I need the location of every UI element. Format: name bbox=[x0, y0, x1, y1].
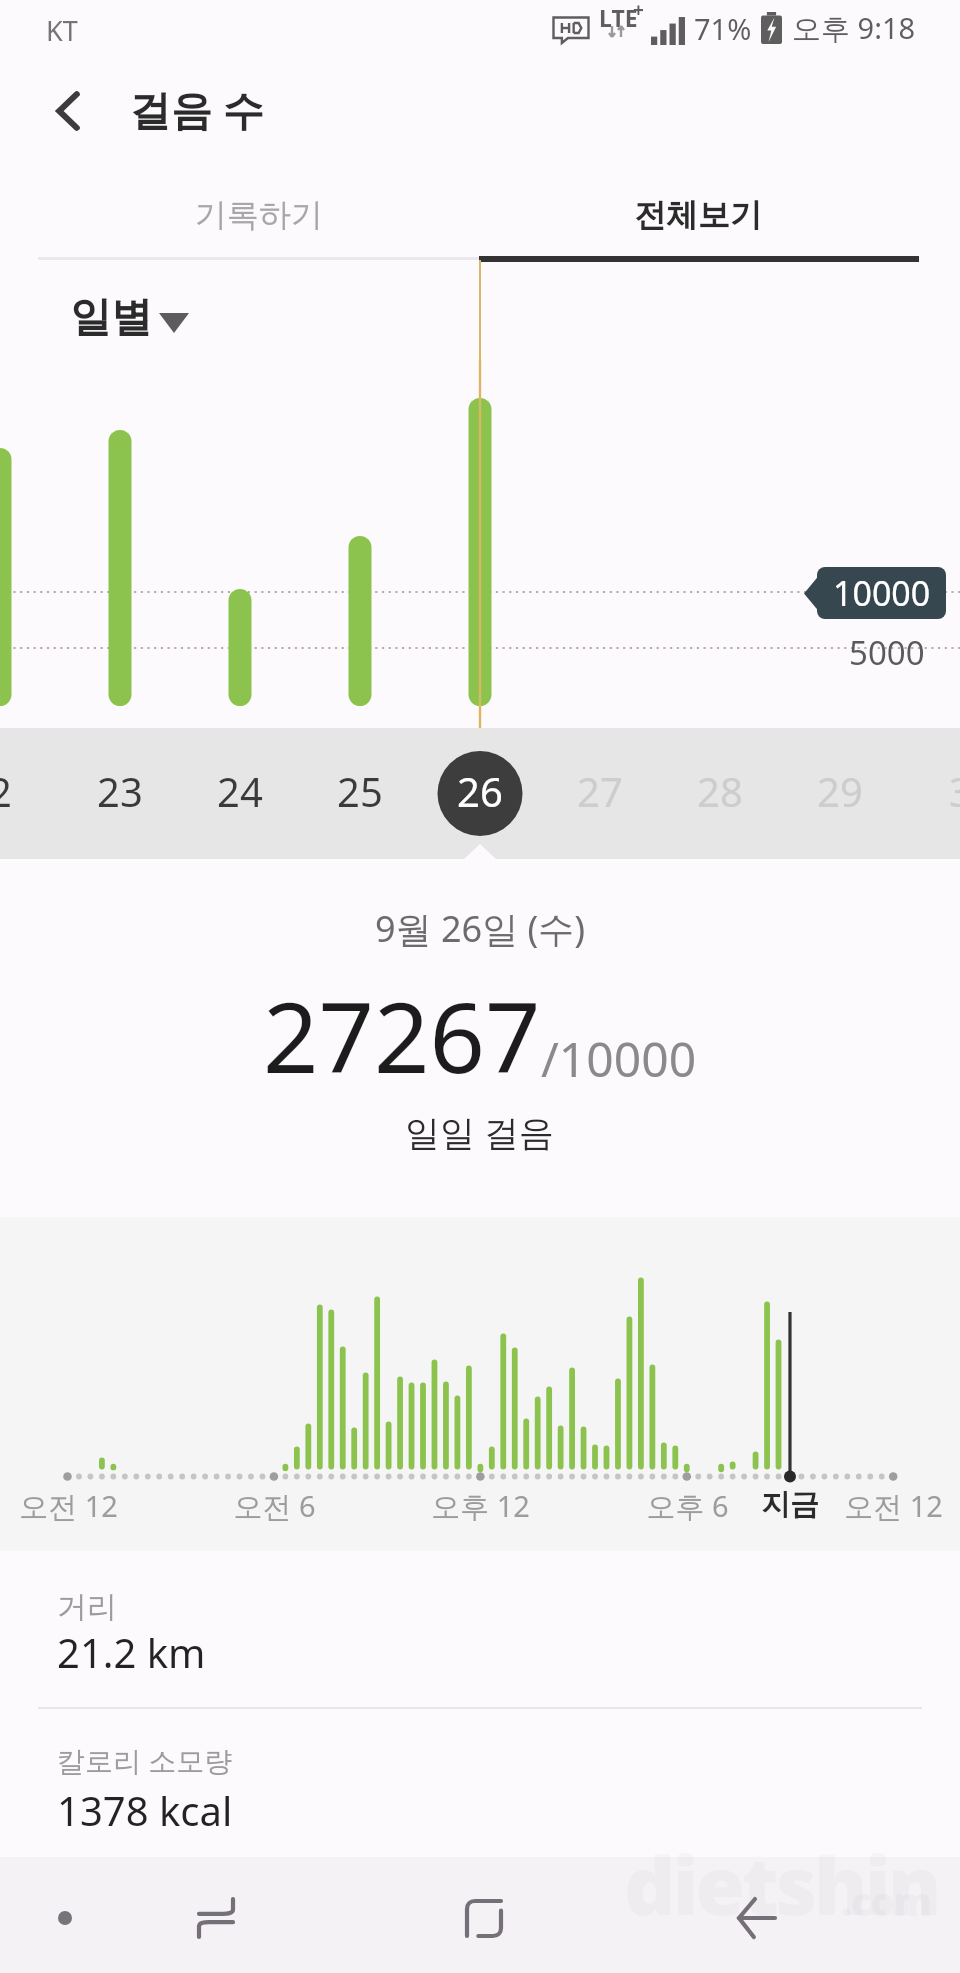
button[interactable]: 전체보기 bbox=[480, 174, 916, 256]
button[interactable]: 26 bbox=[425, 728, 535, 859]
button[interactable]: 25 bbox=[305, 728, 415, 859]
staticText: 27 bbox=[577, 764, 623, 818]
staticText: 오후 6 bbox=[646, 1486, 729, 1526]
button[interactable]: 27 bbox=[545, 728, 655, 859]
button[interactable]: 28 bbox=[665, 728, 775, 859]
staticText: 2 bbox=[0, 764, 12, 818]
staticText: 25 bbox=[337, 764, 383, 818]
button[interactable]: 23 bbox=[65, 728, 175, 859]
staticText: 걸음 수 bbox=[130, 81, 264, 137]
button[interactable]: 29 bbox=[785, 728, 895, 859]
staticText: KT bbox=[46, 12, 78, 49]
staticText: 3 bbox=[949, 764, 960, 818]
staticText: 오후 12 bbox=[431, 1486, 530, 1526]
staticText: 9월 26일 (수) bbox=[375, 904, 586, 953]
staticText: 오전 12 bbox=[844, 1486, 943, 1526]
button[interactable]: Home bbox=[414, 1857, 554, 1973]
button[interactable]: 일별 bbox=[56, 288, 196, 350]
button[interactable]: 24 bbox=[185, 728, 295, 859]
staticText: 기록하기 bbox=[195, 195, 323, 235]
staticText: 5000 bbox=[849, 630, 925, 675]
staticText: 거리 bbox=[57, 1588, 117, 1626]
staticText: 10000 bbox=[833, 570, 931, 616]
button[interactable]: 2 bbox=[0, 728, 55, 859]
button[interactable]: 거리 bbox=[0, 1570, 960, 1708]
button[interactable]: Recent apps bbox=[146, 1857, 286, 1973]
staticText: dietshin bbox=[624, 1829, 939, 1938]
staticText: 칼로리 소모량 bbox=[57, 1741, 233, 1779]
staticText: 1378 kcal bbox=[57, 1783, 233, 1837]
button[interactable]: Back bbox=[685, 1857, 825, 1973]
staticText: 28 bbox=[697, 764, 743, 818]
staticText: 일일 걸음 bbox=[405, 1108, 555, 1156]
staticText: LTE bbox=[599, 2, 638, 33]
staticText: 오전 12 bbox=[19, 1486, 118, 1526]
staticText: 오후 9:18 bbox=[792, 8, 916, 48]
staticText: 오전 6 bbox=[233, 1486, 316, 1526]
staticText: 27267 bbox=[263, 969, 541, 1101]
staticText: .com bbox=[841, 1875, 931, 1927]
staticText: 24 bbox=[217, 764, 263, 818]
button[interactable]: Menu bbox=[5, 1857, 125, 1973]
staticText: 일별 bbox=[70, 292, 152, 344]
button[interactable]: 기록하기 bbox=[38, 174, 480, 256]
staticText: 21.2 km bbox=[57, 1625, 206, 1679]
staticText: 지금 bbox=[761, 1486, 819, 1523]
staticText: 29 bbox=[817, 764, 863, 818]
button[interactable]: 칼로리 소모량 bbox=[0, 1709, 960, 1847]
button[interactable]: Back bbox=[26, 66, 110, 156]
staticText: 71% bbox=[694, 9, 752, 48]
staticText: 23 bbox=[97, 764, 143, 818]
staticText: 26 bbox=[457, 764, 503, 818]
staticText: /10000 bbox=[541, 1026, 697, 1091]
staticText: 전체보기 bbox=[634, 195, 762, 235]
staticText: + bbox=[633, 0, 644, 23]
